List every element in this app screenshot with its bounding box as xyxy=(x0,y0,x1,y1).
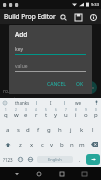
staticText: 5 xyxy=(45,108,47,112)
button[interactable]: Home xyxy=(33,168,45,180)
button[interactable]: . xyxy=(75,152,85,167)
staticText: 2 xyxy=(15,108,17,112)
button[interactable]: g xyxy=(43,122,54,137)
staticText: 9 xyxy=(85,108,87,112)
button[interactable]: we xyxy=(65,98,92,107)
staticText: c xyxy=(41,141,44,149)
staticText: I xyxy=(50,100,52,106)
staticText: k xyxy=(80,126,84,134)
staticText: a xyxy=(6,126,10,134)
staticText: 1 xyxy=(5,108,7,112)
button[interactable]: Change language xyxy=(25,152,35,167)
staticText: s xyxy=(17,126,20,134)
staticText: English xyxy=(48,157,62,162)
staticText: l xyxy=(92,126,94,134)
button[interactable]: d xyxy=(23,122,33,137)
staticText: i xyxy=(75,111,77,119)
button[interactable]: z xyxy=(15,137,26,152)
button[interactable]: Voice input xyxy=(92,98,101,107)
button[interactable]: m xyxy=(77,137,87,152)
button[interactable]: Add property xyxy=(84,81,97,94)
button[interactable]: Emoji xyxy=(15,152,25,167)
button[interactable]: Recents xyxy=(56,168,68,180)
button[interactable]: 8 xyxy=(71,107,81,122)
staticText: value xyxy=(15,63,28,70)
staticText: Build Prop Editor xyxy=(4,12,56,21)
button[interactable]: h xyxy=(54,122,65,137)
button[interactable]: 2 xyxy=(11,107,21,122)
staticText: OK xyxy=(76,81,84,88)
button[interactable]: thanks xyxy=(9,98,36,107)
staticText: g xyxy=(47,126,51,134)
staticText: 6 xyxy=(55,108,57,112)
staticText: 9:33 xyxy=(91,2,99,7)
staticText: t xyxy=(45,111,48,119)
staticText: j xyxy=(70,126,72,134)
staticText: o xyxy=(84,111,88,119)
staticText: google xyxy=(3,96,18,98)
staticText: n xyxy=(70,141,74,149)
button[interactable]: 9 xyxy=(81,107,91,122)
button[interactable]: b xyxy=(57,137,67,152)
button[interactable]: Backspace xyxy=(87,137,101,152)
button[interactable]: n xyxy=(67,137,77,152)
button[interactable]: CANCEL xyxy=(43,79,70,90)
staticText: we xyxy=(75,100,82,106)
staticText: Add xyxy=(15,30,28,39)
button[interactable]: Save xyxy=(73,12,83,22)
button[interactable]: Back xyxy=(11,168,23,180)
staticText: m xyxy=(79,141,85,149)
button[interactable]: 0 xyxy=(91,107,101,122)
staticText: CANCEL xyxy=(47,81,66,88)
button[interactable]: f xyxy=(33,122,43,137)
button[interactable]: English xyxy=(37,156,73,163)
button[interactable]: 4 xyxy=(31,107,41,122)
button[interactable]: v xyxy=(47,137,57,152)
button[interactable]: Hide keyboard xyxy=(78,168,90,180)
button[interactable]: k xyxy=(76,122,87,137)
staticText: h xyxy=(58,126,62,134)
button[interactable]: j xyxy=(65,122,76,137)
button[interactable]: Search xyxy=(58,12,68,22)
button[interactable]: I xyxy=(37,98,64,107)
staticText: p xyxy=(94,111,98,119)
button[interactable]: x xyxy=(26,137,37,152)
button[interactable]: a xyxy=(3,122,13,137)
staticText: z xyxy=(19,141,22,149)
button[interactable]: 1 xyxy=(0,107,11,122)
staticText: v xyxy=(50,141,54,149)
staticText: d xyxy=(26,126,30,134)
button[interactable]: Enter xyxy=(86,154,100,165)
staticText: . xyxy=(79,156,81,163)
button[interactable]: s xyxy=(13,122,23,137)
staticText: ?123 xyxy=(3,157,13,163)
button[interactable]: ?123 xyxy=(0,152,15,167)
staticText: u xyxy=(64,111,68,119)
staticText: w xyxy=(14,111,19,119)
button[interactable]: OK xyxy=(72,79,88,90)
staticText: x xyxy=(30,141,34,149)
staticText: q xyxy=(4,111,8,119)
staticText: 7 xyxy=(65,108,67,112)
button[interactable]: 6 xyxy=(51,107,61,122)
staticText: ro.product.brand xyxy=(3,88,44,95)
staticText: 4 xyxy=(35,108,37,112)
button[interactable]: c xyxy=(37,137,47,152)
staticText: e xyxy=(24,111,28,119)
button[interactable]: 3 xyxy=(21,107,31,122)
staticText: 3 xyxy=(25,108,27,112)
button[interactable]: Info xyxy=(88,12,98,22)
staticText: r xyxy=(35,111,38,119)
button[interactable]: Shift xyxy=(0,137,15,152)
staticText: key xyxy=(15,46,23,53)
button[interactable]: Expand suggestions xyxy=(0,98,9,107)
staticText: y xyxy=(54,111,58,119)
button[interactable]: 5 xyxy=(41,107,51,122)
staticText: f xyxy=(37,126,40,134)
staticText: 0 xyxy=(95,108,97,112)
button[interactable]: l xyxy=(87,122,98,137)
staticText: thanks xyxy=(15,100,30,106)
staticText: b xyxy=(60,141,64,149)
button[interactable]: 7 xyxy=(61,107,71,122)
staticText: 8 xyxy=(75,108,77,112)
